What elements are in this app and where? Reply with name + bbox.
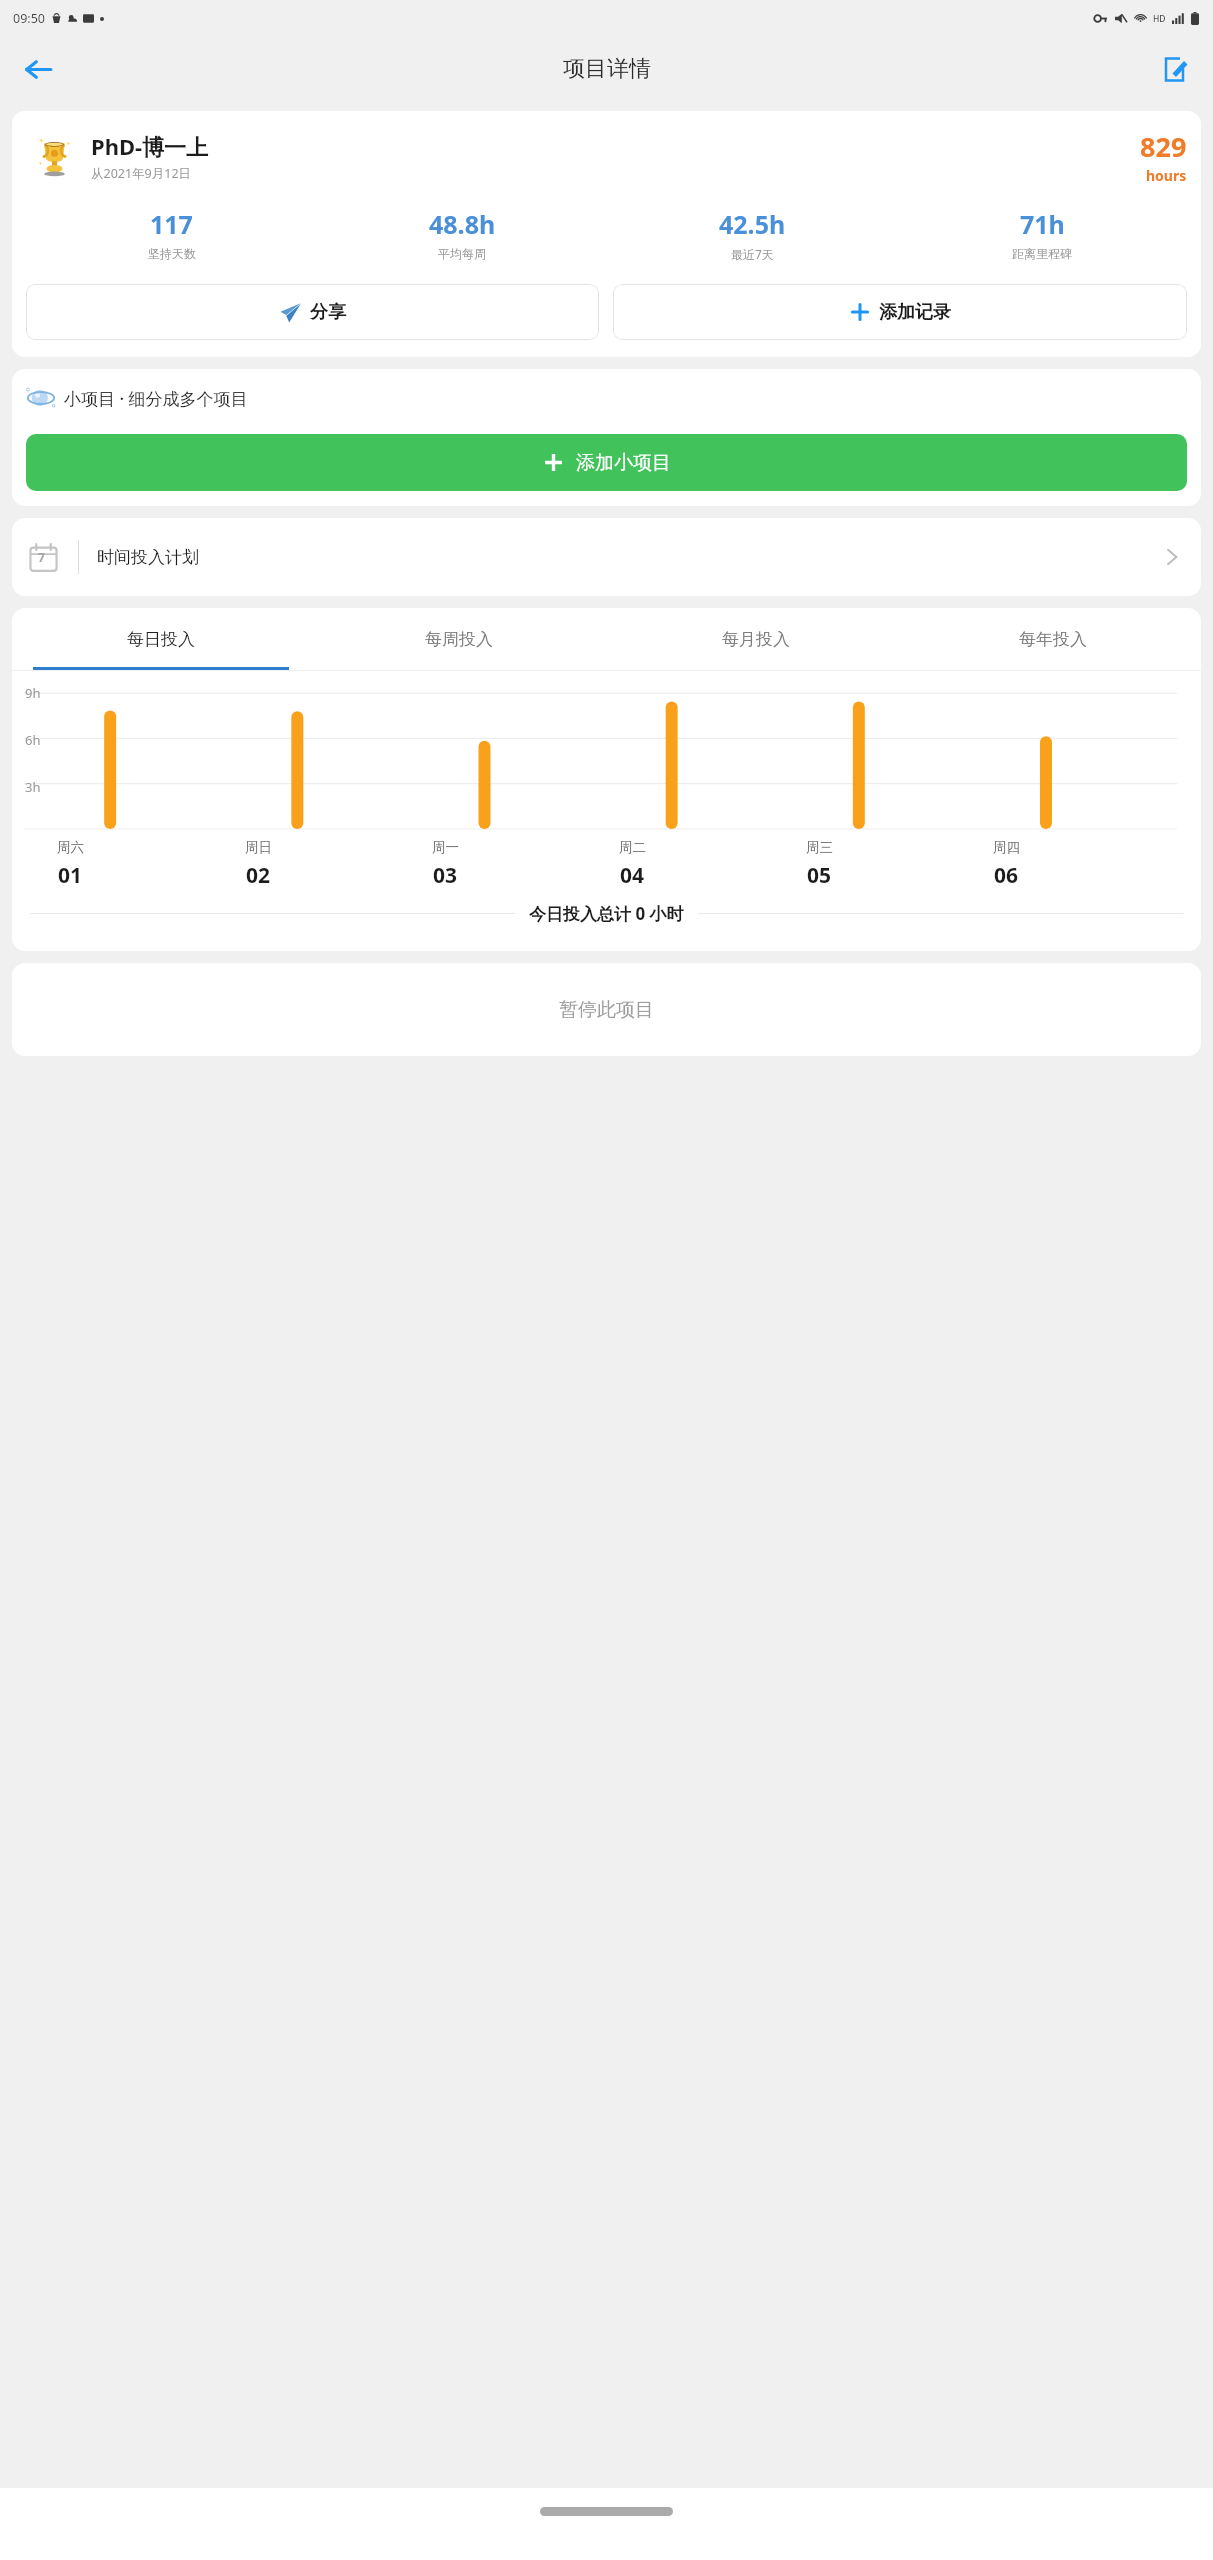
button[interactable]: 每月投入 [607, 608, 904, 670]
staticText: 周一 [432, 839, 459, 856]
button[interactable]: 添加记录 [613, 284, 1187, 340]
staticText: 7 [38, 549, 45, 565]
button[interactable]: 117 [26, 207, 317, 261]
staticText: 今日投入总计 0 小时 [529, 902, 684, 925]
staticText: 48.8h [429, 207, 496, 241]
staticText: 周日 [245, 839, 272, 856]
staticText: 每年投入 [1019, 629, 1087, 650]
button[interactable]: 48.8h [317, 207, 607, 261]
staticText: 小项目 · 细分成多个项目 [64, 387, 248, 410]
staticText: 周四 [993, 839, 1020, 856]
staticText: 01 [58, 861, 83, 890]
staticText: 从2021年9月12日 [91, 165, 192, 182]
button[interactable]: Back [12, 43, 64, 95]
staticText: 坚持天数 [148, 246, 196, 261]
staticText: 117 [150, 207, 193, 241]
staticText: 添加小项目 [576, 451, 671, 475]
staticText: 04 [620, 861, 645, 890]
button[interactable]: 添加小项目 [26, 434, 1187, 491]
staticText: 71h [1020, 207, 1065, 241]
button[interactable]: 分享 [26, 284, 599, 340]
staticText: 3h [25, 778, 41, 796]
staticText: 05 [807, 861, 832, 890]
button[interactable]: 每日投入 [12, 608, 310, 670]
staticText: 每日投入 [127, 629, 195, 650]
staticText: 03 [433, 861, 458, 890]
staticText: PhD-博一上 [91, 131, 209, 161]
staticText: 周六 [57, 839, 84, 856]
staticText: 分享 [310, 301, 346, 324]
staticText: 每周投入 [425, 629, 493, 650]
button[interactable]: 42.5h [607, 207, 897, 262]
staticText: 暂停此项目 [559, 998, 654, 1022]
staticText: 9h [25, 684, 41, 702]
staticText: 时间投入计划 [97, 547, 199, 568]
button[interactable]: 7 [12, 518, 1201, 596]
staticText: 09:50 [13, 10, 45, 27]
staticText: 项目详情 [563, 55, 651, 83]
staticText: 06 [994, 861, 1019, 890]
staticText: 添加记录 [879, 301, 951, 324]
staticText: 周二 [619, 839, 646, 856]
button[interactable]: 每周投入 [310, 608, 607, 670]
button[interactable]: 暂停此项目 [12, 963, 1201, 1056]
staticText: 最近7天 [731, 246, 774, 262]
staticText: 距离里程碑 [1012, 246, 1072, 261]
staticText: HD [1153, 13, 1166, 25]
button[interactable]: 每年投入 [904, 608, 1201, 670]
staticText: 02 [246, 861, 271, 890]
staticText: 周三 [806, 839, 833, 856]
button[interactable]: 71h [897, 207, 1187, 261]
staticText: 829 [1140, 128, 1187, 165]
staticText: hours [1146, 166, 1187, 185]
staticText: 6h [25, 731, 41, 749]
button[interactable]: Edit [1149, 44, 1199, 94]
staticText: 每月投入 [722, 629, 790, 650]
staticText: 平均每周 [438, 246, 486, 261]
staticText: 42.5h [719, 207, 786, 241]
